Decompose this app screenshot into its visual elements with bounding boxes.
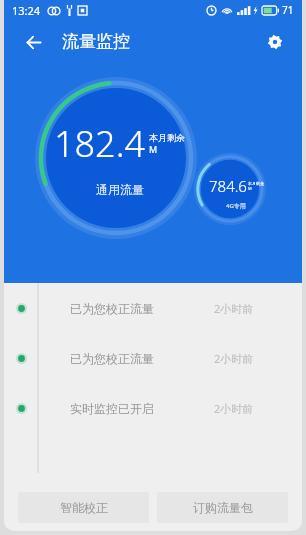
staticText: 13:24 — [12, 3, 41, 18]
staticText: 订购流量包 — [193, 500, 253, 515]
button[interactable]: 订购流量包 — [157, 492, 288, 523]
button[interactable]: Back — [16, 25, 50, 59]
staticText: M — [248, 186, 252, 191]
staticText: 本月剩余 — [248, 181, 264, 186]
staticText: 通用流量 — [96, 182, 144, 197]
button[interactable]: Settings — [258, 25, 292, 59]
button[interactable]: 智能校正 — [18, 492, 149, 523]
staticText: 2小时前 — [214, 401, 254, 416]
staticText: 182.4 — [54, 119, 146, 168]
staticText: 已为您校正流量 — [70, 351, 154, 366]
staticText: 智能校正 — [60, 500, 108, 515]
button[interactable]: 已为您校正流量 — [4, 297, 302, 319]
staticText: 2小时前 — [214, 301, 254, 316]
button[interactable]: 实时监控已开启 — [4, 397, 302, 419]
staticText: 2小时前 — [214, 351, 254, 366]
staticText: M — [149, 143, 158, 155]
staticText: 4G专用 — [226, 202, 246, 210]
button[interactable]: 已为您校正流量 — [4, 347, 302, 369]
staticText: 本月剩余 — [149, 132, 185, 143]
staticText: 784.6 — [209, 176, 247, 196]
staticText: 流量监控 — [62, 31, 130, 52]
staticText: 已为您校正流量 — [70, 301, 154, 316]
staticText: 实时监控已开启 — [70, 401, 154, 416]
staticText: 71 — [282, 3, 294, 17]
